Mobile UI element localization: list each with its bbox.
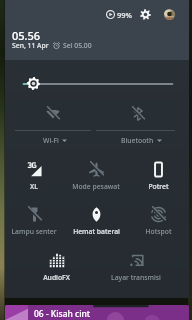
staticText: Potret [148, 182, 169, 191]
button[interactable]: AudioFX [25, 253, 87, 282]
button[interactable]: Lampu senter [3, 207, 65, 236]
staticText: Bluetooth [121, 136, 154, 145]
button[interactable]: Mode pesawat [65, 162, 127, 191]
button[interactable]: Settings [137, 6, 153, 22]
button[interactable]: Media notification [5, 305, 189, 320]
button[interactable]: Layar transmisi [105, 253, 167, 282]
staticText: Hemat baterai [73, 227, 120, 236]
button[interactable]: Potret [127, 162, 189, 191]
staticText: 05.56 [12, 28, 41, 43]
staticText: AudioFX [43, 273, 70, 282]
staticText: Wi-Fi [43, 136, 59, 145]
button[interactable] [96, 100, 175, 145]
button[interactable]: XL [3, 162, 65, 191]
button[interactable]: User profile [164, 9, 175, 20]
button[interactable]: Hotspot [127, 207, 189, 236]
staticText: Layar transmisi [111, 273, 161, 282]
staticText: 99% [117, 10, 132, 20]
button[interactable] [15, 100, 91, 145]
staticText: Sel 05.00 [63, 41, 92, 50]
staticText: Lampu senter [11, 227, 57, 236]
staticText: XL [30, 182, 38, 191]
staticText: Hotspot [145, 227, 172, 236]
staticText: Sen, 11 Apr [12, 41, 49, 50]
button[interactable]: Brightness [5, 74, 189, 94]
button[interactable]: Hemat baterai [65, 207, 127, 236]
staticText: Mode pesawat [72, 182, 120, 191]
staticText: 06 - Kisah cint [34, 308, 91, 320]
